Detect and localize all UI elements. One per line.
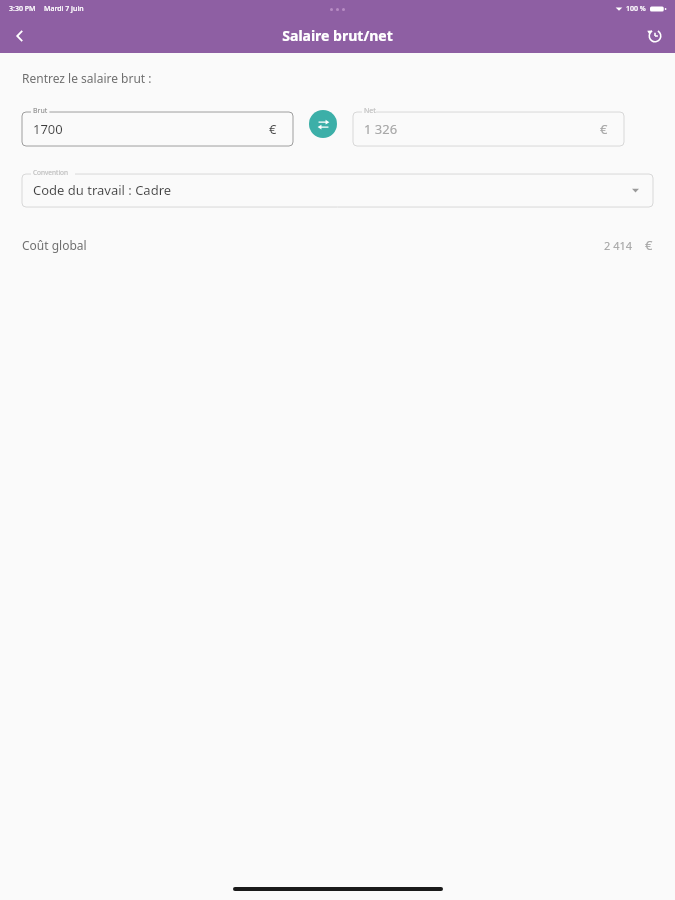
staticText: Coût global xyxy=(22,237,87,253)
staticText: Brut xyxy=(33,106,48,116)
staticText: Mardi 7 juin xyxy=(44,4,84,14)
button[interactable]: Brut xyxy=(22,102,293,146)
button[interactable]: History xyxy=(635,18,675,53)
staticText: Convention xyxy=(33,168,69,177)
staticText: Salaire brut/net xyxy=(282,26,393,45)
staticText: € xyxy=(600,120,608,138)
staticText: 100 % xyxy=(626,4,646,14)
staticText: 1 326 xyxy=(364,120,398,138)
staticText: Code du travail : Cadre xyxy=(33,181,172,199)
staticText: 1700 xyxy=(33,120,63,138)
staticText: Rentrez le salaire brut : xyxy=(22,70,152,86)
button[interactable]: Convention xyxy=(22,165,653,207)
staticText: Net xyxy=(364,106,376,116)
button[interactable]: Swap brut and net xyxy=(309,110,337,138)
staticText: € xyxy=(645,236,653,254)
staticText: € xyxy=(269,120,277,138)
button[interactable]: Net xyxy=(353,102,624,146)
staticText: 2 414 xyxy=(604,238,633,253)
button[interactable]: Back xyxy=(0,18,40,53)
staticText: 3:30 PM xyxy=(9,4,36,14)
